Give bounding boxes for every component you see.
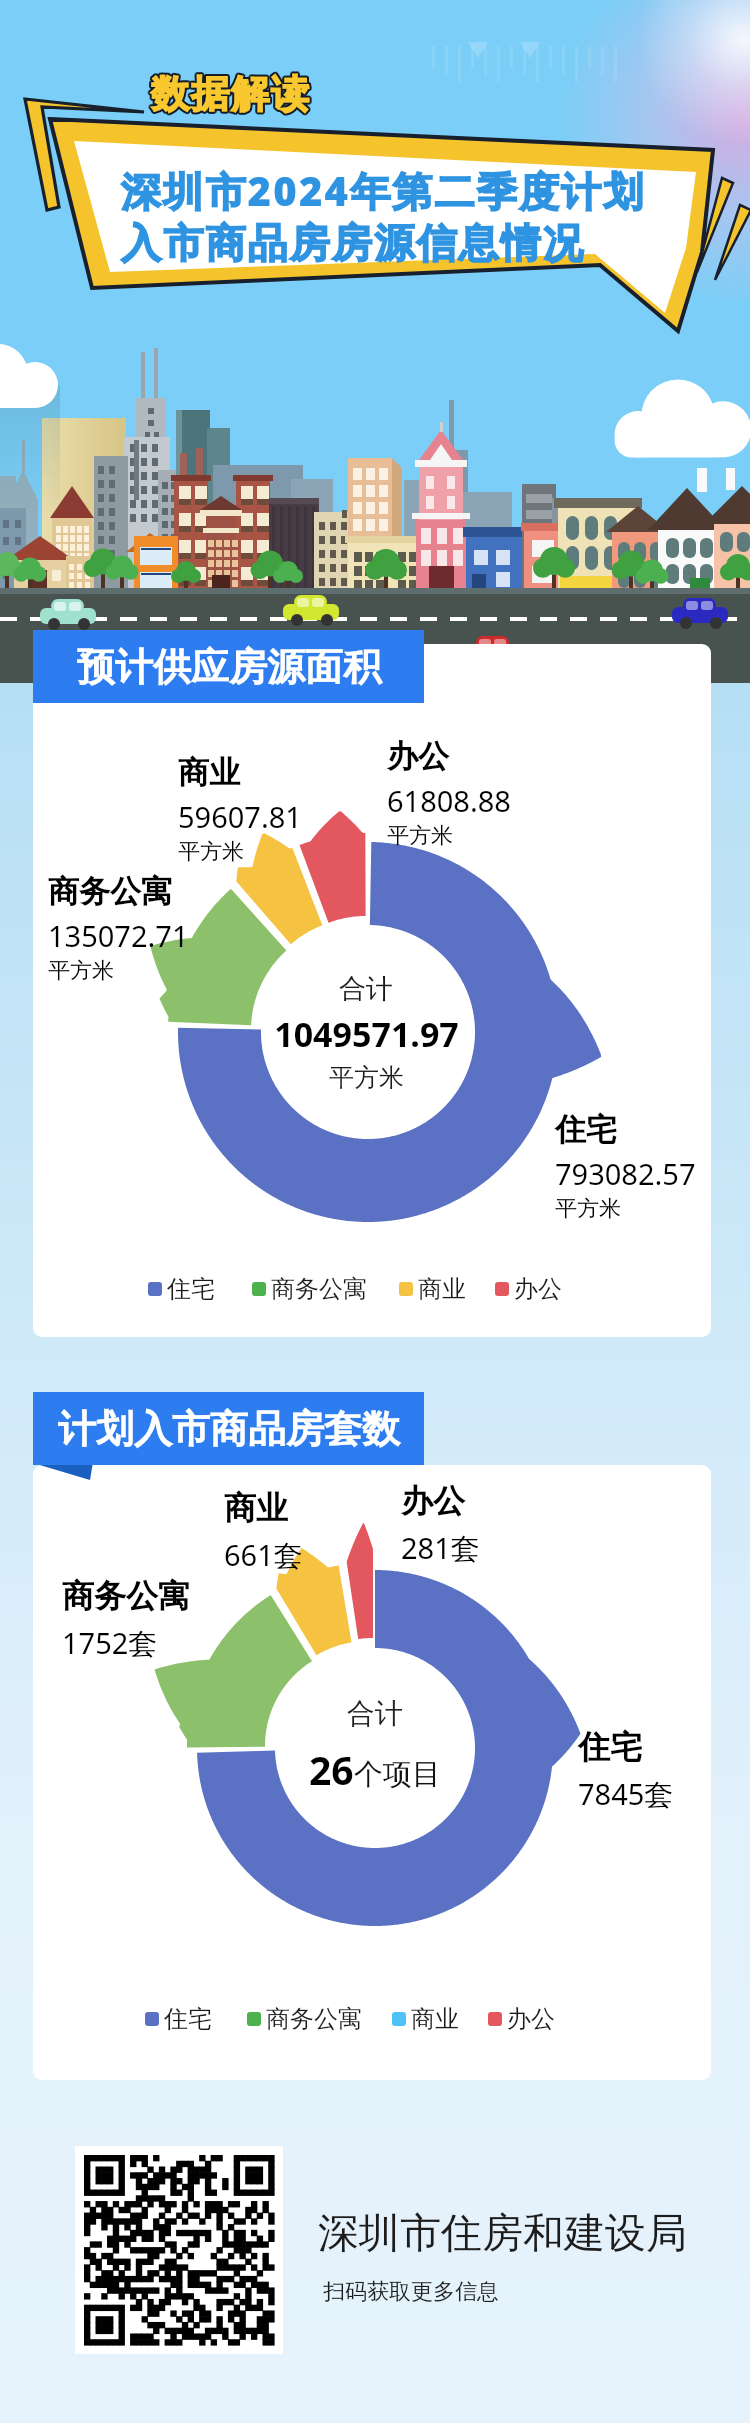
staticText: 661套	[224, 1535, 303, 1575]
staticText: 深圳市2024年第二季度计划	[121, 163, 646, 218]
staticText: 数据解读	[149, 72, 309, 120]
staticText: 数据解读	[152, 70, 312, 118]
staticText: 数据解读	[148, 69, 308, 117]
staticText: 281套	[401, 1528, 480, 1568]
button[interactable]: 计划入市商品房套数图表	[33, 1465, 711, 2080]
button[interactable]: 二维码	[75, 2146, 283, 2354]
staticText: 数据解读	[150, 69, 310, 117]
staticText: 办公	[507, 2004, 555, 2034]
staticText: 合计	[339, 972, 393, 1006]
staticText: 办公	[514, 1274, 562, 1304]
button[interactable]: 住宅	[148, 1274, 215, 1304]
staticText: 61808.88	[387, 781, 511, 820]
staticText: 入市商品房房源信息情况	[121, 218, 586, 268]
staticText: 数据解读	[151, 72, 311, 120]
button[interactable]: 办公	[495, 1274, 562, 1304]
staticText: 商业	[418, 1274, 466, 1304]
staticText: 商业	[411, 2004, 459, 2034]
staticText: 平方米	[48, 957, 114, 985]
staticText: 793082.57	[555, 1154, 696, 1193]
staticText: 数据解读	[150, 72, 310, 120]
button[interactable]: 商业	[392, 2004, 459, 2034]
staticText: 商务公寓	[266, 2004, 362, 2034]
staticText: 住宅	[578, 1727, 642, 1767]
staticText: 数据解读	[149, 71, 309, 119]
staticText: 计划入市商品房套数	[58, 1405, 400, 1453]
staticText: 数据解读	[152, 71, 312, 119]
staticText: 平方米	[387, 822, 453, 850]
button[interactable]: 商业	[399, 1274, 466, 1304]
staticText: 26	[309, 1743, 354, 1796]
staticText: 住宅	[555, 1110, 617, 1149]
button[interactable]: 住宅	[145, 2004, 212, 2034]
staticText: 个项目	[354, 1756, 441, 1793]
button[interactable]: 预计供应房源面积图表	[33, 644, 711, 1337]
staticText: 数据解读	[149, 68, 309, 116]
button[interactable]: 预计供应房源面积	[33, 630, 424, 703]
staticText: 合计	[347, 1696, 403, 1731]
staticText: 数据解读	[150, 68, 310, 116]
button[interactable]: 计划入市商品房套数	[33, 1392, 424, 1465]
staticText: 数据解读	[149, 70, 309, 118]
staticText: 数据解读	[150, 70, 310, 118]
staticText: 平方米	[555, 1195, 621, 1223]
staticText: 数据解读	[150, 71, 310, 119]
staticText: 商务公寓	[48, 872, 172, 911]
staticText: 数据解读	[148, 70, 308, 118]
staticText: 7845套	[578, 1774, 674, 1814]
staticText: 住宅	[164, 2004, 212, 2034]
staticText: 59607.81	[178, 797, 302, 836]
button[interactable]: 办公	[488, 2004, 555, 2034]
staticText: 135072.71	[48, 916, 189, 955]
button[interactable]: 商务公寓	[252, 1274, 367, 1304]
staticText: 平方米	[329, 1062, 404, 1093]
staticText: 住宅	[167, 1274, 215, 1304]
staticText: 数据解读	[149, 69, 309, 117]
staticText: 扫码获取更多信息	[323, 2278, 499, 2306]
staticText: 深圳市住房和建设局	[318, 2208, 687, 2260]
staticText: 数据解读	[150, 70, 310, 118]
staticText: 商业	[224, 1488, 288, 1528]
staticText: 商务公寓	[271, 1274, 367, 1304]
staticText: 商业	[178, 753, 240, 792]
staticText: 1049571.97	[274, 1011, 459, 1057]
staticText: 数据解读	[151, 71, 311, 119]
staticText: 数据解读	[152, 69, 312, 117]
staticText: 数据解读	[151, 69, 311, 117]
staticText: 数据解读	[148, 71, 308, 119]
staticText: 办公	[401, 1481, 465, 1521]
staticText: 预计供应房源面积	[77, 643, 381, 691]
staticText: 商务公寓	[62, 1576, 190, 1616]
staticText: 办公	[387, 737, 449, 776]
staticText: 数据解读	[151, 68, 311, 116]
staticText: 平方米	[178, 838, 244, 866]
button[interactable]: 商务公寓	[247, 2004, 362, 2034]
staticText: 数据解读	[151, 70, 311, 118]
staticText: 1752套	[62, 1623, 158, 1663]
